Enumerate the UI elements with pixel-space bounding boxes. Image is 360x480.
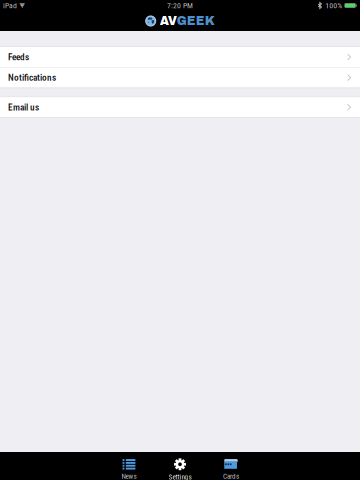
staticText: 100% (325, 1, 342, 10)
staticText: Cards (223, 472, 239, 480)
staticText: Email us (8, 102, 39, 113)
button[interactable]: Email us (0, 97, 360, 117)
button[interactable]: Settings (154, 452, 205, 480)
staticText: Feeds (8, 51, 29, 62)
staticText: Settings (168, 473, 191, 480)
button[interactable]: Feeds (0, 47, 360, 67)
button[interactable]: News (103, 452, 154, 480)
staticText: GEEK (177, 14, 215, 28)
button[interactable]: Cards (205, 452, 256, 480)
staticText: iPad (3, 1, 17, 10)
staticText: AV (160, 14, 177, 28)
staticText: News (121, 472, 136, 480)
staticText: 7:20 PM (167, 1, 193, 10)
staticText: Notifications (8, 72, 56, 83)
button[interactable]: Notifications (0, 68, 360, 88)
